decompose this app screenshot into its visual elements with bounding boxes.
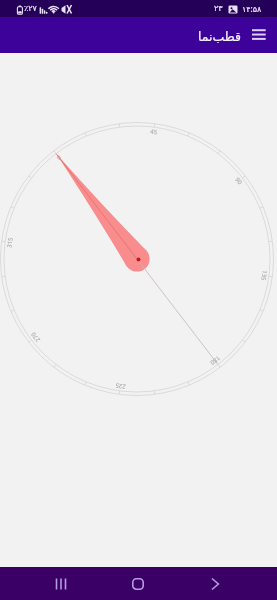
button[interactable]: Back: [199, 568, 231, 600]
button[interactable]: Home: [122, 568, 154, 600]
staticText: قطب‌نما: [198, 29, 242, 44]
button[interactable]: Recents: [45, 568, 77, 600]
staticText: ۲۳: [214, 4, 223, 13]
button[interactable]: Menu: [247, 25, 271, 49]
staticText: ۱۴:۵۸: [242, 3, 262, 14]
staticText: ٪۲۷: [24, 4, 37, 13]
